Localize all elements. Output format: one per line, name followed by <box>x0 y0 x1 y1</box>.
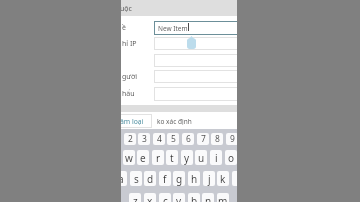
button[interactable]: c <box>159 193 171 202</box>
button[interactable]: ko xác định <box>157 117 192 126</box>
button[interactable]: 3 <box>138 133 150 145</box>
button[interactable]: a <box>121 171 127 186</box>
staticText: New Item <box>158 24 188 33</box>
staticText: v <box>176 194 182 202</box>
button[interactable]: w <box>123 150 135 165</box>
staticText: âm loại <box>121 117 144 126</box>
staticText: d <box>147 172 154 186</box>
button[interactable]: g <box>173 171 185 186</box>
staticText: 6 <box>186 133 191 145</box>
button[interactable]: l <box>232 171 237 186</box>
staticText: c <box>163 194 168 202</box>
button[interactable]: e <box>137 150 149 165</box>
button[interactable]: z <box>129 193 141 202</box>
button[interactable]: âm loại <box>121 114 152 128</box>
staticText: u <box>198 151 205 165</box>
staticText: s <box>134 172 139 186</box>
staticText: g <box>176 172 183 186</box>
button[interactable]: 8 <box>211 133 223 145</box>
button[interactable]: i <box>210 150 222 165</box>
button[interactable]: f <box>159 171 171 186</box>
staticText: n <box>205 194 212 202</box>
button[interactable]: y <box>181 150 193 165</box>
staticText: x <box>147 194 153 202</box>
button[interactable]: 5 <box>167 133 179 145</box>
staticText: z <box>133 194 138 202</box>
button[interactable]: o <box>225 150 237 165</box>
button[interactable] <box>154 70 237 83</box>
button[interactable]: h <box>188 171 200 186</box>
staticText: e <box>140 151 146 165</box>
button[interactable]: x <box>144 193 156 202</box>
staticText: f <box>163 172 167 186</box>
staticText: 2 <box>128 133 133 145</box>
button[interactable]: b <box>188 193 200 202</box>
button[interactable]: m <box>217 193 229 202</box>
button[interactable]: u <box>195 150 207 165</box>
button[interactable]: 6 <box>182 133 194 145</box>
staticText: w <box>125 151 133 165</box>
button[interactable] <box>154 87 237 101</box>
staticText: m <box>218 194 228 202</box>
staticText: ề <box>122 23 126 33</box>
staticText: t <box>170 151 174 165</box>
staticText: 5 <box>171 133 176 145</box>
button[interactable]: 9 <box>226 133 237 145</box>
button[interactable]: k <box>217 171 229 186</box>
staticText: j <box>208 172 211 186</box>
button[interactable]: 4 <box>153 133 165 145</box>
staticText: 3 <box>142 133 147 145</box>
staticText: 7 <box>201 133 206 145</box>
button[interactable]: 2 <box>124 133 136 145</box>
button[interactable]: v <box>173 193 185 202</box>
button[interactable]: d <box>144 171 156 186</box>
button[interactable]: New Item <box>154 21 237 35</box>
staticText: h <box>191 172 198 186</box>
staticText: hỉ IP <box>122 39 137 49</box>
staticText: y <box>184 151 190 165</box>
staticText: 8 <box>215 133 220 145</box>
button[interactable] <box>154 54 237 67</box>
staticText: hẩu <box>122 89 135 99</box>
button[interactable]: j <box>203 171 215 186</box>
button[interactable]: 7 <box>197 133 209 145</box>
staticText: uộc <box>121 4 132 14</box>
staticText: gười <box>122 72 138 82</box>
button[interactable]: r <box>152 150 164 165</box>
staticText: 4 <box>157 133 162 145</box>
staticText: o <box>228 151 235 165</box>
staticText: i <box>215 151 218 165</box>
staticText: 9 <box>230 133 235 145</box>
button[interactable]: t <box>166 150 178 165</box>
staticText: r <box>156 151 161 165</box>
staticText: a <box>121 172 124 186</box>
button[interactable]: s <box>130 171 142 186</box>
button[interactable] <box>154 37 237 50</box>
button[interactable]: n <box>202 193 214 202</box>
staticText: b <box>191 194 198 202</box>
staticText: k <box>220 172 226 186</box>
